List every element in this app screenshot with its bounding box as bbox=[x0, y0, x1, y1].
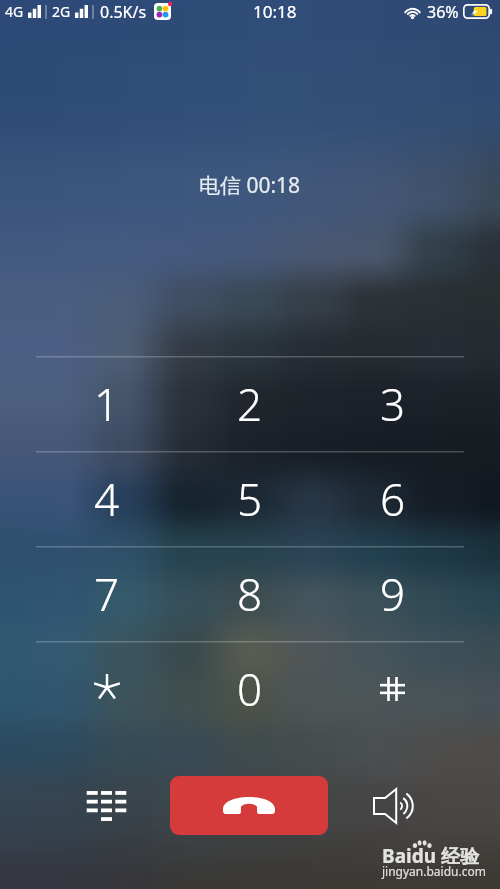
button[interactable]: 0 bbox=[178, 641, 321, 736]
button[interactable]: 2 bbox=[178, 356, 321, 451]
staticText: 2G bbox=[52, 2, 71, 21]
button[interactable]: 5 bbox=[178, 451, 321, 546]
staticText: 5 bbox=[237, 469, 263, 529]
button[interactable]: 4 bbox=[36, 451, 178, 546]
staticText: 36% bbox=[427, 1, 459, 23]
button[interactable]: 8 bbox=[178, 546, 321, 641]
staticText: 电信 00:18 bbox=[199, 171, 301, 200]
staticText: 10:18 bbox=[253, 0, 297, 23]
staticText: 4G bbox=[5, 2, 24, 21]
staticText: 2 bbox=[237, 374, 263, 434]
button[interactable]: End call bbox=[170, 776, 328, 835]
staticText: 1 bbox=[94, 374, 120, 434]
button[interactable]: 7 bbox=[36, 546, 178, 641]
button[interactable] bbox=[36, 641, 178, 736]
button[interactable]: Speaker bbox=[364, 776, 425, 835]
button[interactable]: 9 bbox=[321, 546, 464, 641]
staticText: 0 bbox=[237, 659, 263, 719]
button[interactable]: 3 bbox=[321, 356, 464, 451]
staticText: 8 bbox=[237, 564, 263, 624]
staticText: 9 bbox=[380, 564, 406, 624]
staticText: Baidu 经验 bbox=[382, 843, 479, 869]
staticText: jingyan.baidu.com bbox=[382, 863, 486, 879]
staticText: 3 bbox=[380, 374, 406, 434]
staticText: 7 bbox=[94, 564, 120, 624]
button[interactable]: 6 bbox=[321, 451, 464, 546]
button[interactable] bbox=[321, 641, 464, 736]
button[interactable]: 1 bbox=[36, 356, 178, 451]
button[interactable]: Keypad bbox=[76, 776, 137, 835]
staticText: 6 bbox=[380, 469, 406, 529]
staticText: 4 bbox=[94, 469, 120, 529]
staticText: 0.5K/s bbox=[100, 1, 147, 23]
